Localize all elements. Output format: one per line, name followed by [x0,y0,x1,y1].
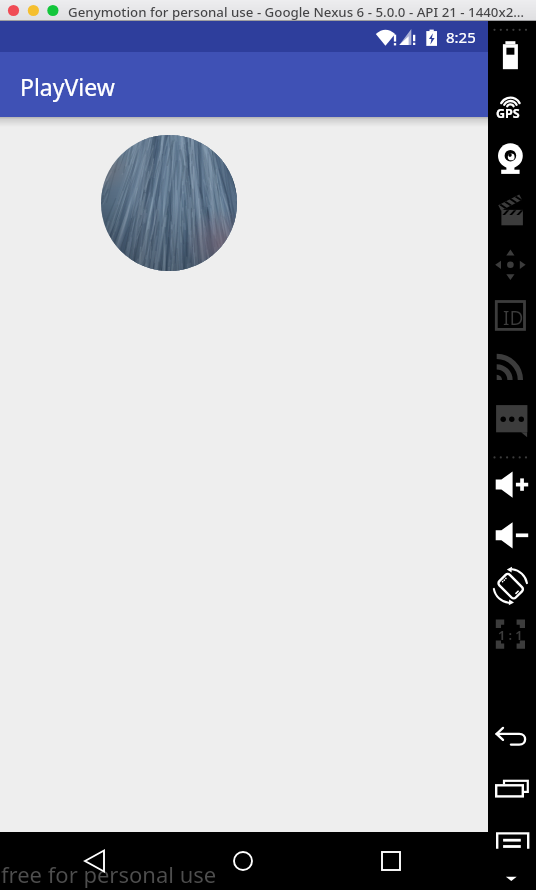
button[interactable]: Navigation pad [490,245,534,286]
staticText: Genymotion for personal use - Google Nex… [68,3,525,21]
button[interactable]: Volume down [490,515,534,556]
button[interactable]: Menu [490,815,534,856]
button[interactable]: Recent apps [490,768,534,809]
staticText: PlayView [20,71,115,102]
staticText: GPS [496,105,520,122]
button[interactable]: Back [490,717,534,758]
button[interactable]: Video recording [490,189,534,230]
button[interactable]: SMS [490,398,534,439]
button[interactable]: Back [61,832,129,890]
staticText: free for personal use [1,859,217,889]
staticText: 8:25 [446,27,476,47]
button[interactable]: Network [490,345,534,386]
button[interactable]: Recents [357,832,425,890]
staticText: ID [503,305,524,331]
button[interactable]: Battery [490,35,534,76]
button[interactable]: GPS [490,83,534,124]
button[interactable]: Identifiers [490,296,534,337]
button[interactable]: Rotate [490,566,534,607]
staticText: 1 : 1 [498,627,523,644]
button[interactable]: Actual size [490,615,534,656]
button[interactable]: Home [209,832,277,890]
button[interactable]: Profile photo [101,135,237,271]
button[interactable]: More [490,866,534,890]
button[interactable]: Volume up [490,465,534,506]
button[interactable]: Camera [490,136,534,177]
